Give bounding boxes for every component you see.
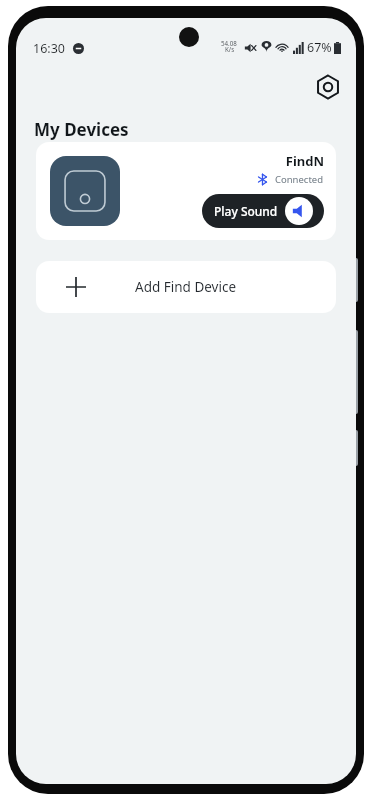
staticText: Add Find Device — [135, 278, 237, 296]
button[interactable]: Add Find Device — [36, 261, 336, 313]
staticText: 16:30 — [33, 40, 65, 57]
staticText: 54.08 — [221, 39, 237, 47]
staticText: Play Sound — [214, 203, 278, 219]
staticText: FindN — [36, 152, 324, 170]
button[interactable]: Settings — [307, 66, 349, 108]
staticText: Connected — [275, 173, 324, 186]
button[interactable]: FindN — [36, 142, 336, 240]
staticText: K/s — [225, 45, 235, 53]
staticText: My Devices — [34, 118, 129, 141]
staticText: 67% — [307, 39, 332, 56]
button[interactable]: Play Sound — [202, 194, 324, 228]
